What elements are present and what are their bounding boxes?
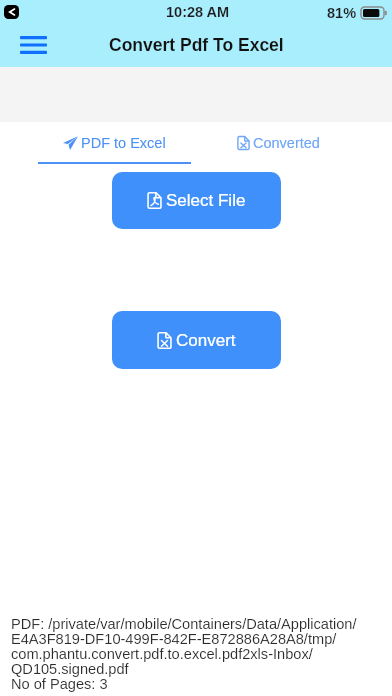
staticText: Select File [166, 191, 246, 210]
button[interactable]: Menu [7, 24, 60, 65]
staticText: PDF: /private/var/mobile/Containers/Data… [11, 616, 392, 692]
button[interactable]: PDF to Excel [38, 122, 190, 165]
staticText: 10:28 AM [166, 4, 230, 20]
staticText: 81% [327, 5, 357, 21]
staticText: Convert Pdf To Excel [109, 35, 284, 55]
button[interactable]: Select File [112, 172, 281, 229]
staticText: PDF to Excel [81, 135, 166, 151]
staticText: Convert [176, 331, 236, 350]
button[interactable]: Convert [112, 311, 281, 369]
button[interactable]: Back [4, 5, 19, 19]
button[interactable]: Converted [202, 122, 354, 165]
staticText: Converted [253, 135, 320, 151]
